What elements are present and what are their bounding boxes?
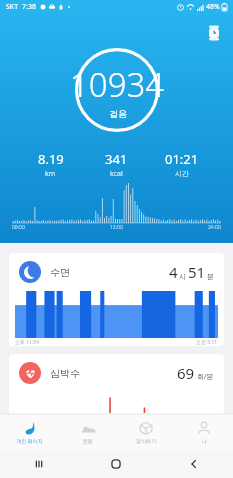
button[interactable]: 수면 <box>9 253 224 346</box>
staticText: 나 <box>202 438 207 444</box>
button[interactable]: Recents <box>0 450 77 478</box>
staticText: 운동 <box>83 438 93 444</box>
button[interactable]: 심박수 <box>9 354 224 414</box>
button[interactable]: 10934 <box>55 28 179 152</box>
button[interactable]: Back <box>155 450 233 478</box>
staticText: 수면 <box>50 266 70 279</box>
staticText: 01:21 <box>165 150 199 168</box>
staticText: 24:00 <box>208 224 221 231</box>
staticText: 걸음 <box>109 108 127 119</box>
staticText: 개인 페이지 <box>16 438 43 445</box>
button[interactable]: 같이하기 <box>117 414 175 450</box>
button[interactable]: Connected watch <box>203 22 225 44</box>
staticText: 00:00 <box>12 224 25 231</box>
staticText: 분 <box>207 272 214 281</box>
staticText: 오후 11:54 <box>15 339 40 346</box>
staticText: 341 <box>105 150 128 168</box>
button[interactable]: 운동 <box>59 414 117 450</box>
staticText: km <box>45 169 56 179</box>
button[interactable]: Home <box>77 450 155 478</box>
staticText: 10934 <box>70 62 165 107</box>
staticText: 69 <box>177 363 195 383</box>
button[interactable]: 나 <box>175 414 233 450</box>
staticText: 회/분 <box>197 372 214 382</box>
staticText: 4 <box>169 262 178 282</box>
staticText: kcal <box>110 169 123 179</box>
staticText: SKT <box>6 2 19 12</box>
staticText: 48% <box>206 2 220 12</box>
button[interactable]: 개인 페이지 <box>0 414 59 450</box>
staticText: 같이하기 <box>136 438 156 444</box>
staticText: 8.19 <box>38 150 64 168</box>
staticText: 시 <box>179 272 186 281</box>
staticText: 시간 <box>175 169 189 178</box>
staticText: 오전 5:11 <box>196 339 218 346</box>
staticText: 심박수 <box>50 367 80 380</box>
staticText: 7:38 <box>22 2 36 12</box>
staticText: 51 <box>188 262 206 282</box>
staticText: 12:00 <box>110 224 123 231</box>
